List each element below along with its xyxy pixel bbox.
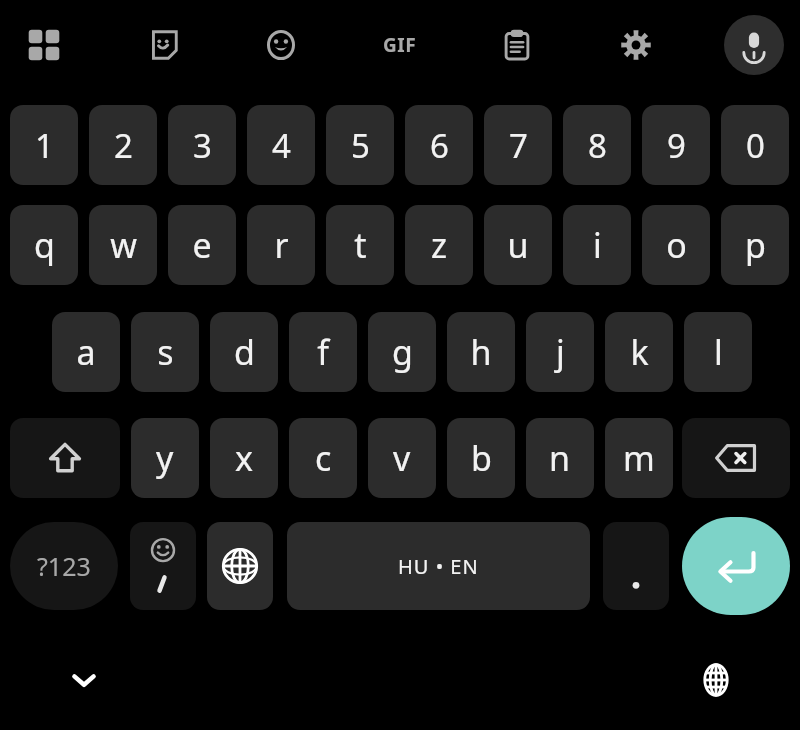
button[interactable]: q <box>10 205 78 285</box>
button[interactable]: 8 <box>563 105 631 185</box>
button[interactable]: 5 <box>326 105 394 185</box>
staticText: 2 <box>114 123 133 168</box>
button[interactable]: 4 <box>247 105 315 185</box>
button[interactable]: GIF <box>370 29 430 61</box>
button[interactable]: w <box>89 205 157 285</box>
staticText: h <box>470 329 492 375</box>
button[interactable]: v <box>368 418 436 498</box>
staticText: q <box>34 222 55 268</box>
staticText: 5 <box>351 123 370 168</box>
button[interactable]: Period <box>603 522 669 610</box>
staticText: a <box>76 329 96 375</box>
button[interactable]: u <box>484 205 552 285</box>
button[interactable]: a <box>52 312 120 392</box>
button[interactable]: t <box>326 205 394 285</box>
staticText: e <box>192 222 212 268</box>
button[interactable]: 1 <box>10 105 78 185</box>
staticText: v <box>393 435 411 481</box>
button[interactable]: Emoji and comma <box>130 522 196 610</box>
button[interactable]: Voice input <box>724 15 784 75</box>
button[interactable]: Shift <box>10 418 120 498</box>
staticText: i <box>593 222 602 268</box>
button[interactable]: HU • EN <box>287 522 590 610</box>
button[interactable]: p <box>721 205 789 285</box>
staticText: d <box>234 329 255 375</box>
button[interactable]: h <box>447 312 515 392</box>
button[interactable]: c <box>289 418 357 498</box>
button[interactable]: n <box>526 418 594 498</box>
staticText: w <box>110 222 137 268</box>
button[interactable]: l <box>684 312 752 392</box>
button[interactable]: g <box>368 312 436 392</box>
staticText: k <box>630 329 649 375</box>
staticText: x <box>235 435 253 481</box>
staticText: o <box>666 222 687 268</box>
staticText: HU • EN <box>398 553 479 580</box>
staticText: 6 <box>430 123 449 168</box>
staticText: f <box>317 329 329 375</box>
button[interactable]: k <box>605 312 673 392</box>
staticText: l <box>714 329 723 375</box>
staticText: ?123 <box>37 549 91 583</box>
button[interactable]: b <box>447 418 515 498</box>
staticText: c <box>315 435 332 481</box>
button[interactable]: s <box>131 312 199 392</box>
staticText: 4 <box>272 123 291 168</box>
staticText: z <box>431 222 447 268</box>
staticText: y <box>156 435 174 481</box>
staticText: 3 <box>193 123 212 168</box>
staticText: g <box>392 329 413 375</box>
button[interactable]: Apps <box>18 19 70 71</box>
button[interactable]: x <box>210 418 278 498</box>
button[interactable]: 3 <box>168 105 236 185</box>
staticText: 1 <box>35 123 54 168</box>
staticText: 7 <box>509 123 528 168</box>
staticText: 0 <box>746 123 765 168</box>
button[interactable]: Emoji <box>255 19 307 71</box>
button[interactable]: 0 <box>721 105 789 185</box>
button[interactable]: y <box>131 418 199 498</box>
button[interactable]: i <box>563 205 631 285</box>
staticText: GIF <box>383 32 417 58</box>
button[interactable]: d <box>210 312 278 392</box>
button[interactable]: f <box>289 312 357 392</box>
button[interactable]: 2 <box>89 105 157 185</box>
button[interactable]: Hide keyboard <box>48 648 120 712</box>
staticText: b <box>471 435 492 481</box>
staticText: 9 <box>667 123 686 168</box>
button[interactable]: m <box>605 418 673 498</box>
staticText: j <box>556 329 565 375</box>
staticText: p <box>745 222 766 268</box>
button[interactable]: 6 <box>405 105 473 185</box>
button[interactable]: 7 <box>484 105 552 185</box>
button[interactable]: Switch input method <box>680 648 752 712</box>
button[interactable]: z <box>405 205 473 285</box>
button[interactable]: Clipboard <box>491 19 543 71</box>
staticText: n <box>549 435 571 481</box>
staticText: r <box>274 222 289 268</box>
button[interactable]: j <box>526 312 594 392</box>
staticText: 8 <box>588 123 607 168</box>
staticText: s <box>157 329 174 375</box>
button[interactable]: Backspace <box>682 418 790 498</box>
button[interactable]: o <box>642 205 710 285</box>
button[interactable]: r <box>247 205 315 285</box>
button[interactable]: e <box>168 205 236 285</box>
staticText: t <box>354 222 367 268</box>
staticText: m <box>623 435 655 481</box>
button[interactable]: 9 <box>642 105 710 185</box>
button[interactable]: Enter <box>682 517 790 615</box>
button[interactable]: Change language <box>207 522 273 610</box>
staticText: u <box>507 222 529 268</box>
button[interactable]: Stickers <box>137 19 189 71</box>
button[interactable]: Settings <box>610 19 662 71</box>
button[interactable]: ?123 <box>10 522 118 610</box>
